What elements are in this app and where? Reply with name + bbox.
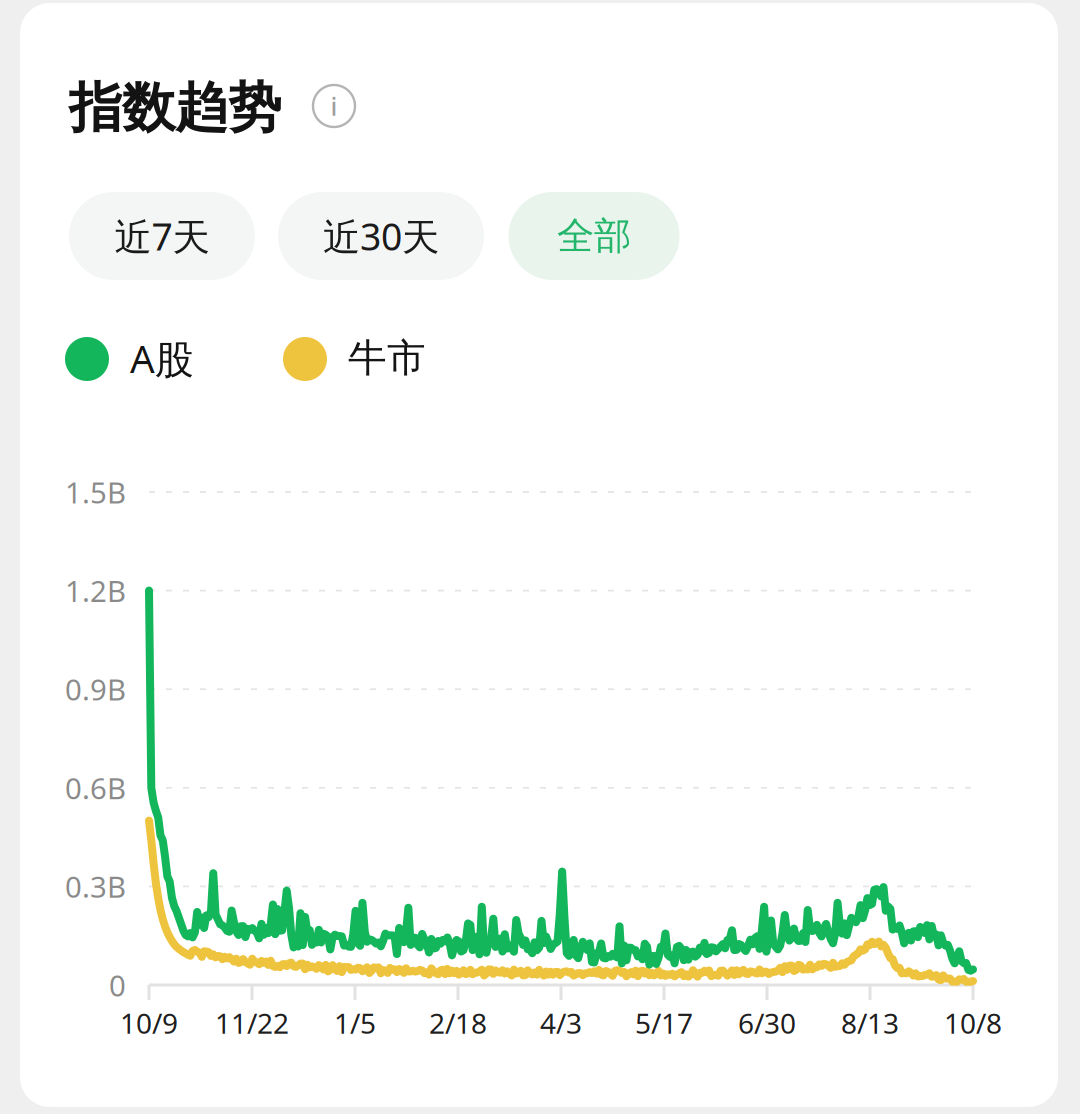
button[interactable]: 近7天 <box>69 192 255 280</box>
staticText: 1.2B <box>65 571 126 610</box>
staticText: 8/13 <box>841 1004 899 1042</box>
staticText: 全部 <box>557 213 631 259</box>
staticText: 10/8 <box>944 1004 1002 1042</box>
staticText: 6/30 <box>738 1004 796 1042</box>
staticText: 指数趋势 <box>69 75 281 141</box>
staticText: 0.9B <box>65 670 126 709</box>
staticText: 1/5 <box>334 1004 376 1042</box>
staticText: A股 <box>130 332 194 384</box>
staticText: 1.5B <box>65 472 126 511</box>
button[interactable]: 近30天 <box>278 192 484 280</box>
button[interactable]: 全部 <box>508 192 679 280</box>
staticText: 近30天 <box>323 211 439 261</box>
staticText: i <box>330 89 337 123</box>
button[interactable]: More info <box>311 83 357 129</box>
staticText: 11/22 <box>215 1004 289 1042</box>
staticText: 4/3 <box>540 1004 582 1042</box>
staticText: 0.6B <box>65 768 126 807</box>
staticText: 近7天 <box>114 211 209 261</box>
staticText: 牛市 <box>348 334 426 382</box>
staticText: 10/9 <box>120 1004 178 1042</box>
staticText: 5/17 <box>635 1004 693 1042</box>
staticText: 0 <box>109 965 126 1004</box>
staticText: 2/18 <box>429 1004 487 1042</box>
staticText: 0.3B <box>65 867 126 906</box>
